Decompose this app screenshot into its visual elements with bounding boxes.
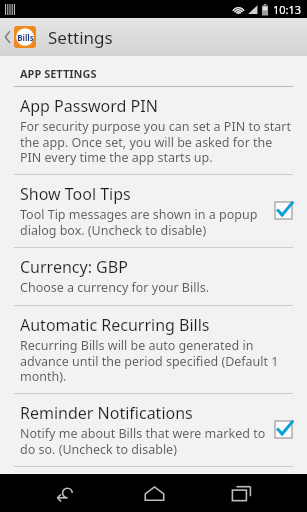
staticText: Choose a currency for your Bills. [20,279,209,296]
staticText: Notify me about Bills that were marked t… [20,425,266,457]
staticText: Recurring Bills will be auto generated i… [20,337,293,384]
button[interactable]: Navigate up [0,22,40,52]
button[interactable]: Show Tool Tips [0,175,307,247]
staticText: Reminder Notifications [20,402,193,424]
staticText: For security purpose you can set a PIN t… [20,118,293,165]
button[interactable]: Back [41,474,89,512]
staticText: Tool Tip messages are shown in a popup d… [20,206,266,238]
staticText: Notification Time: 07:30 [20,475,199,497]
button[interactable]: Automatic Recurring Bills [0,306,307,393]
staticText: Notifications are popped up at this time… [20,498,293,503]
button[interactable]: Home [130,474,178,512]
staticText: Settings [48,26,113,49]
staticText: APP SETTINGS [20,66,97,81]
button[interactable]: App Password PIN [0,87,307,174]
button[interactable]: Notification Time: 07:30 [0,467,307,512]
staticText: 10:13 [273,2,302,17]
button[interactable]: Currency: GBP [0,248,307,305]
staticText: Show Tool Tips [20,183,131,205]
staticText: Bills [17,32,34,43]
button[interactable]: Toggle [274,420,293,439]
button[interactable]: Toggle [274,201,293,220]
button[interactable]: Recent apps [218,474,266,512]
staticText: App Password PIN [20,95,158,117]
staticText: Automatic Recurring Bills [20,314,210,336]
staticText: Currency: GBP [20,256,128,278]
button[interactable]: Reminder Notifications [0,394,307,466]
